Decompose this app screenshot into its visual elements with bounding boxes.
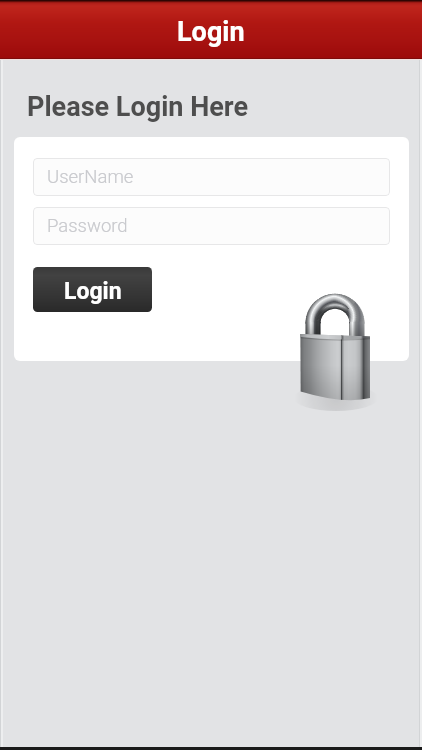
button[interactable]: Login [33,267,152,312]
staticText: UserName [47,166,134,188]
button[interactable]: Password [33,207,390,245]
button[interactable]: UserName [33,158,390,196]
other: Secure login [290,285,380,410]
staticText: Login [177,16,245,48]
staticText: Please Login Here [27,91,249,123]
staticText: Password [47,215,128,237]
staticText: Login [64,278,122,305]
